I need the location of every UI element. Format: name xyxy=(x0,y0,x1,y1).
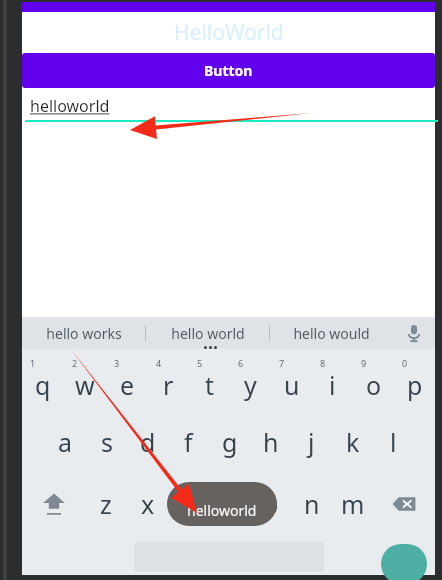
staticText: s xyxy=(101,425,113,459)
button[interactable]: l xyxy=(373,411,414,473)
staticText: helloworld xyxy=(30,95,110,117)
staticText: z xyxy=(100,487,112,521)
button[interactable]: a xyxy=(44,411,86,473)
staticText: 0 xyxy=(402,357,408,369)
button[interactable]: 9 xyxy=(353,349,394,411)
staticText: HelloWorld xyxy=(174,18,284,47)
button[interactable]: Voice input xyxy=(393,317,435,349)
staticText: d xyxy=(140,425,156,459)
staticText: 6 xyxy=(238,357,244,369)
staticText: q xyxy=(35,368,51,402)
button[interactable]: n xyxy=(291,473,332,535)
staticText: x xyxy=(141,487,155,521)
staticText: 1 xyxy=(30,357,36,369)
staticText: n xyxy=(304,487,320,521)
staticText: l xyxy=(390,425,397,459)
staticText: 3 xyxy=(114,357,120,369)
button[interactable]: h xyxy=(250,411,291,473)
staticText: g xyxy=(222,425,238,459)
button[interactable]: z xyxy=(85,473,127,535)
button[interactable]: helloworld xyxy=(22,88,435,122)
button[interactable]: j xyxy=(291,411,332,473)
button[interactable]: c xyxy=(168,473,209,535)
button[interactable]: 2 xyxy=(64,349,106,411)
staticText: v xyxy=(223,487,236,521)
button[interactable]: g xyxy=(209,411,250,473)
button[interactable]: Button xyxy=(22,53,435,88)
staticText: i xyxy=(329,368,336,402)
button[interactable]: Shift xyxy=(22,473,85,535)
staticText: 4 xyxy=(156,357,162,369)
button[interactable]: v xyxy=(209,473,250,535)
staticText: p xyxy=(407,368,423,402)
button[interactable]: m xyxy=(332,473,373,535)
button[interactable]: hello works xyxy=(22,317,145,349)
staticText: b xyxy=(263,487,279,521)
staticText: h xyxy=(263,425,279,459)
staticText: hello would xyxy=(293,324,370,343)
button[interactable]: 4 xyxy=(148,349,189,411)
staticText: helloworld xyxy=(187,501,257,520)
button[interactable]: 8 xyxy=(312,349,353,411)
staticText: u xyxy=(284,368,300,402)
staticText: f xyxy=(184,425,193,459)
button[interactable]: 0 xyxy=(394,349,435,411)
staticText: 9 xyxy=(361,357,367,369)
button[interactable]: Backspace xyxy=(373,473,435,535)
button[interactable]: x xyxy=(127,473,168,535)
button[interactable]: 3 xyxy=(106,349,148,411)
staticText: 5 xyxy=(197,357,203,369)
staticText: w xyxy=(75,368,95,402)
button[interactable]: k xyxy=(332,411,373,473)
button[interactable]: b xyxy=(250,473,291,535)
staticText: c xyxy=(182,487,195,521)
staticText: e xyxy=(120,368,135,402)
staticText: o xyxy=(366,368,382,402)
button[interactable]: 7 xyxy=(271,349,312,411)
staticText: r xyxy=(163,368,174,402)
button[interactable]: 1 xyxy=(22,349,64,411)
staticText: Button xyxy=(204,61,253,80)
button[interactable]: Enter xyxy=(381,544,427,580)
staticText: t xyxy=(205,368,215,402)
staticText: k xyxy=(346,425,360,459)
staticText: y xyxy=(244,368,257,402)
button[interactable]: f xyxy=(168,411,209,473)
staticText: a xyxy=(58,425,73,459)
staticText: 2 xyxy=(72,357,78,369)
button[interactable]: 5 xyxy=(189,349,230,411)
button[interactable]: hello world xyxy=(146,317,269,349)
button[interactable]: s xyxy=(86,411,127,473)
staticText: 7 xyxy=(279,357,285,369)
staticText: hello world xyxy=(171,324,245,343)
button[interactable]: hello would xyxy=(270,317,393,349)
staticText: 8 xyxy=(320,357,326,369)
staticText: j xyxy=(308,425,315,459)
button[interactable]: d xyxy=(127,411,168,473)
staticText: m xyxy=(341,487,365,521)
staticText: hello works xyxy=(46,324,122,343)
button[interactable]: 6 xyxy=(230,349,271,411)
